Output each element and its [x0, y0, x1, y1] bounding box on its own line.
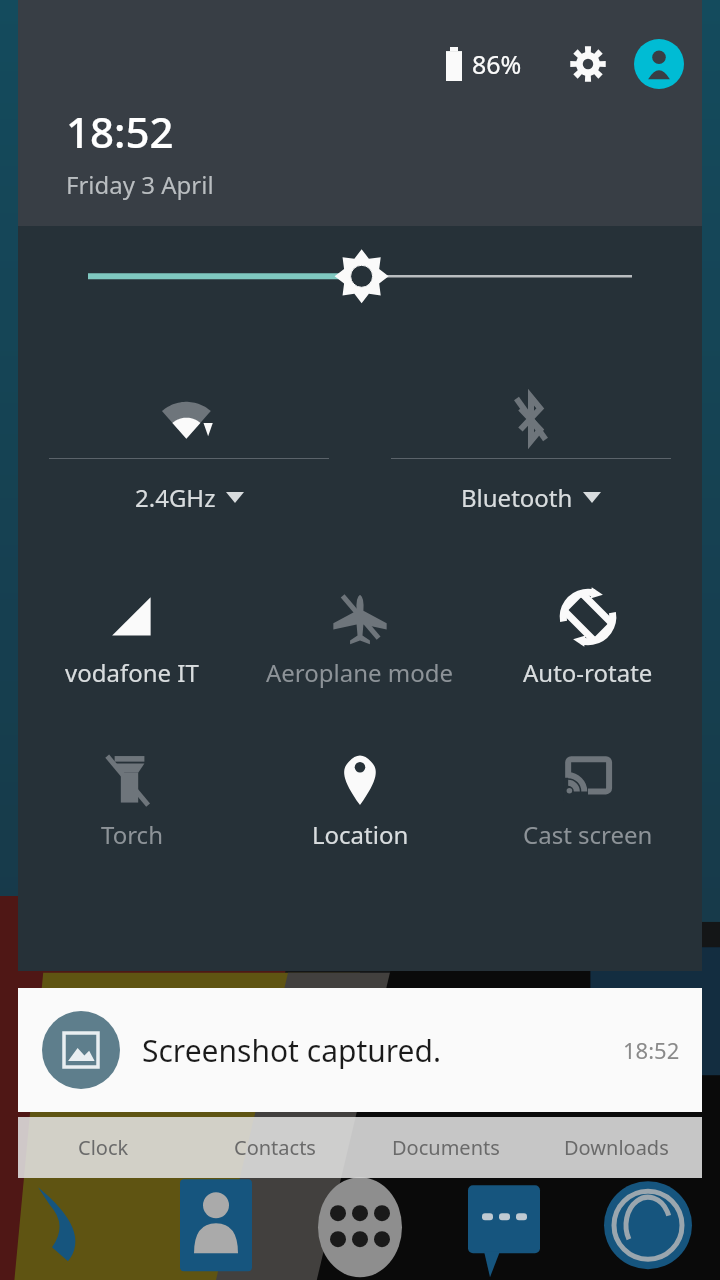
button[interactable]: Location — [246, 740, 474, 870]
button[interactable]: Aeroplane mode — [246, 578, 474, 708]
button[interactable]: 2.4GHz — [18, 386, 360, 536]
staticText: Clock — [78, 1134, 129, 1161]
button[interactable]: Settings — [562, 38, 614, 90]
staticText: Location — [312, 818, 409, 851]
staticText: Aeroplane mode — [266, 656, 454, 689]
staticText: Torch — [101, 818, 163, 851]
staticText: Bluetooth — [461, 481, 573, 514]
staticText: Auto-rotate — [523, 656, 653, 689]
staticText: 18:52 — [623, 1035, 680, 1065]
staticText: 18:52 — [66, 103, 174, 160]
button[interactable]: Bluetooth — [360, 386, 702, 536]
button[interactable]: vodafone IT — [18, 578, 246, 708]
staticText: Contacts — [234, 1134, 316, 1161]
button[interactable]: Torch — [18, 740, 246, 870]
button[interactable]: Brightness — [18, 227, 702, 320]
staticText: vodafone IT — [65, 656, 199, 689]
button[interactable]: Auto-rotate — [474, 578, 702, 708]
button[interactable]: Screenshot captured. — [18, 988, 702, 1112]
staticText: Downloads — [564, 1134, 669, 1161]
staticText: Friday 3 April — [66, 168, 214, 201]
staticText: Documents — [392, 1134, 500, 1161]
staticText: 2.4GHz — [135, 481, 216, 514]
staticText: Cast screen — [523, 818, 653, 851]
button[interactable]: User profile — [634, 39, 684, 89]
staticText: 86% — [472, 47, 522, 81]
staticText: Screenshot captured. — [142, 1030, 441, 1071]
button[interactable]: Cast screen — [474, 740, 702, 870]
